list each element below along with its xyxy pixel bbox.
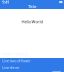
staticText: 9:41: [2, 0, 9, 4]
staticText: Line two of footer: [2, 58, 31, 63]
staticText: Hello World: [21, 19, 42, 24]
staticText: ▮▮▮: [59, 0, 62, 3]
staticText: Footer heading: [2, 51, 27, 56]
staticText: Line three: [2, 65, 19, 70]
staticText: Title: [28, 4, 36, 9]
